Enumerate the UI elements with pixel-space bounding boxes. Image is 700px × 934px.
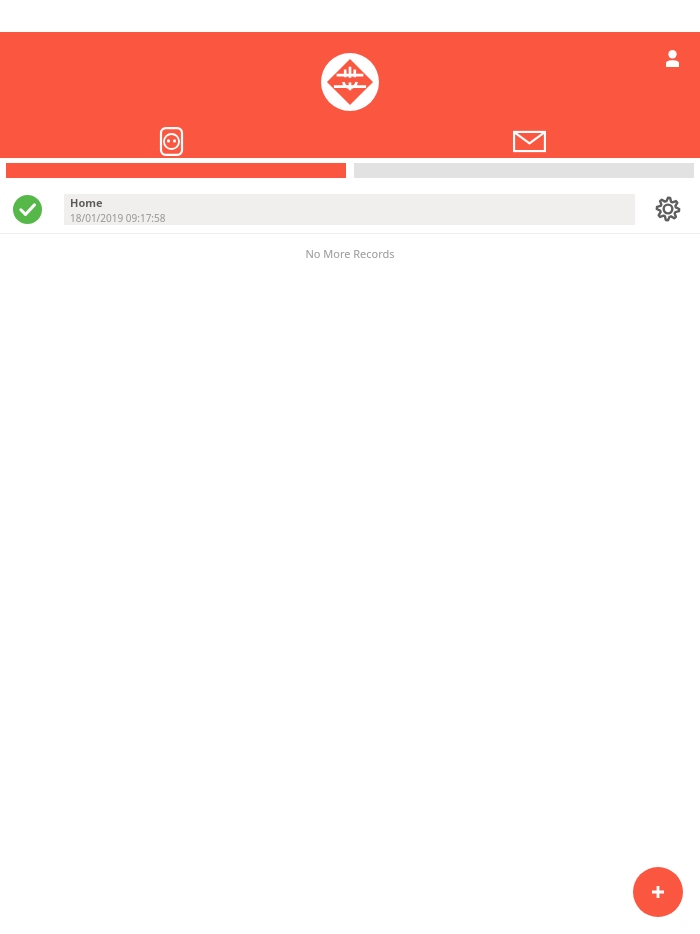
staticText: Home — [70, 195, 103, 210]
button[interactable]: Home — [0, 189, 700, 229]
button[interactable]: Home logo — [321, 53, 379, 111]
button[interactable]: Devices — [146, 116, 196, 166]
button[interactable]: Settings — [635, 189, 700, 229]
button[interactable]: Account — [657, 43, 687, 73]
staticText: No More Records — [305, 246, 395, 261]
staticText: 18/01/2019 09:17:58 — [70, 211, 166, 225]
button[interactable]: Messages — [504, 116, 554, 166]
button[interactable]: Add record — [633, 867, 683, 917]
